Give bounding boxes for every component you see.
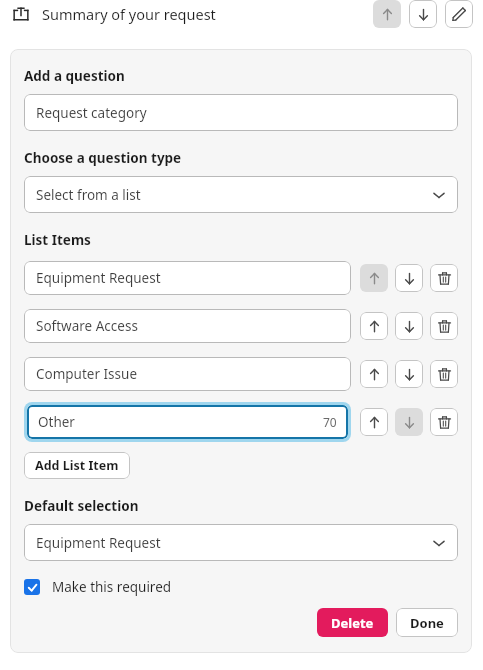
staticText: List Items [24,231,91,249]
button[interactable]: Move item down [395,408,423,436]
button[interactable]: Delete item [430,360,458,388]
button[interactable]: Equipment Request [24,524,458,561]
other: Text field type [10,3,32,25]
staticText: Summary of your request [42,4,216,24]
button[interactable]: Delete item [430,312,458,340]
button[interactable]: Move up [373,0,401,28]
staticText: Add a question [24,67,125,85]
button[interactable]: Computer Issue [24,357,351,391]
button[interactable]: Move item down [395,264,423,292]
button[interactable]: Edit [445,0,473,28]
staticText: Equipment Request [36,534,161,552]
button[interactable]: Request category [24,94,458,131]
staticText: 70 [323,414,337,430]
button[interactable]: Select from a list [24,176,458,213]
button[interactable]: Make this required [24,578,172,596]
button[interactable]: Delete item [430,264,458,292]
button[interactable]: Move item up [360,264,388,292]
button[interactable]: Add List Item [24,452,130,479]
staticText: Add List Item [35,457,119,474]
staticText: Other [38,413,75,431]
staticText: Default selection [24,497,139,515]
staticText: Software Access [36,317,138,335]
button[interactable]: Delete [317,608,388,637]
button[interactable]: Equipment Request [24,261,351,295]
staticText: Select from a list [36,186,141,204]
staticText: Done [410,614,444,632]
button[interactable]: Move down [409,0,437,28]
staticText: Request category [36,104,147,122]
button[interactable]: Other [27,405,348,439]
staticText: Delete [331,614,374,632]
staticText: Choose a question type [24,149,182,167]
staticText: Equipment Request [36,269,161,287]
button[interactable]: Software Access [24,309,351,343]
button[interactable]: Move item down [395,312,423,340]
button[interactable]: Move item up [360,360,388,388]
staticText: Make this required [52,578,172,596]
button[interactable]: Delete item [430,408,458,436]
button[interactable]: Done [396,608,458,637]
button[interactable]: Move item up [360,312,388,340]
button[interactable]: Move item down [395,360,423,388]
button[interactable]: Move item up [360,408,388,436]
staticText: Computer Issue [36,365,138,383]
